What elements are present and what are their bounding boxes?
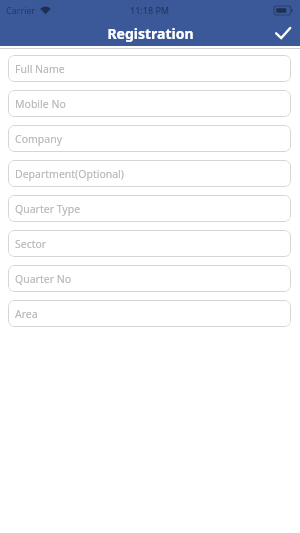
staticText: Department(Optional) xyxy=(15,167,124,181)
button[interactable]: Quarter No xyxy=(8,265,291,292)
button[interactable]: Mobile No xyxy=(8,90,291,117)
staticText: Company xyxy=(15,132,62,146)
button[interactable]: Quarter Type xyxy=(8,195,291,222)
staticText: Area xyxy=(15,307,38,321)
button[interactable]: Sector xyxy=(8,230,291,257)
staticText: Sector xyxy=(15,237,47,251)
staticText: Registration xyxy=(107,24,194,43)
staticText: Carrier xyxy=(6,4,36,16)
button[interactable]: Area xyxy=(8,300,291,327)
staticText: Full Name xyxy=(15,62,65,76)
button[interactable]: Company xyxy=(8,125,291,152)
staticText: Quarter Type xyxy=(15,202,81,216)
staticText: Quarter No xyxy=(15,272,72,286)
staticText: Mobile No xyxy=(15,97,66,111)
button[interactable]: Full Name xyxy=(8,55,291,82)
button[interactable]: Submit registration xyxy=(272,22,294,44)
button[interactable]: Department(Optional) xyxy=(8,160,291,187)
staticText: 11:18 PM xyxy=(130,4,170,16)
